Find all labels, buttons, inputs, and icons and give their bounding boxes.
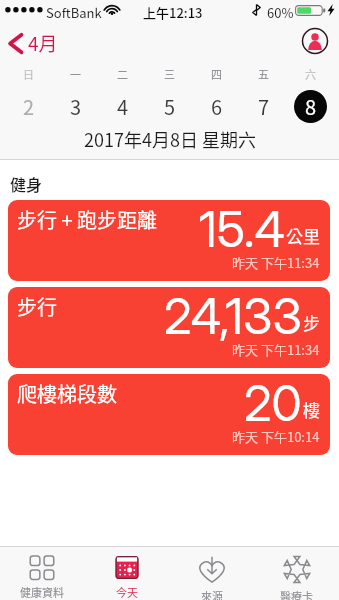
button[interactable]: 5 (146, 84, 193, 128)
staticText: 3 (70, 92, 82, 121)
button[interactable]: 4 (99, 84, 146, 128)
staticText: SoftBank (46, 3, 102, 22)
staticText: 日 (23, 66, 34, 82)
staticText: 爬樓梯段數 (17, 379, 117, 408)
staticText: 7 (258, 92, 270, 121)
staticText: 六 (305, 66, 316, 82)
button[interactable]: 步行 + 跑步距離 (8, 200, 330, 281)
button[interactable]: 6 (193, 84, 240, 128)
staticText: 步行 (17, 292, 57, 321)
staticText: 24,133 (164, 287, 302, 346)
staticText: 今天 (116, 584, 138, 600)
staticText: 健康資料 (20, 584, 64, 600)
staticText: 4 (117, 92, 129, 121)
staticText: 昨天 下午11:34 (232, 253, 320, 272)
staticText: 8 (305, 92, 317, 121)
staticText: 5 (164, 92, 176, 121)
button[interactable]: 爬樓梯段數 (8, 374, 330, 455)
button[interactable]: 7 (240, 84, 287, 128)
button[interactable]: Profile (301, 27, 329, 55)
staticText: 步 (303, 310, 320, 335)
staticText: 步行 + 跑步距離 (17, 205, 158, 234)
staticText: 昨天 下午11:34 (232, 340, 320, 359)
staticText: 2 (23, 92, 35, 121)
button[interactable]: 醫療卡 (254, 547, 339, 600)
staticText: 昨天 下午10:14 (232, 427, 320, 446)
button[interactable]: 3 (52, 84, 99, 128)
staticText: 二 (117, 66, 128, 82)
button[interactable]: 健康資料 (0, 547, 84, 600)
staticText: 15.4 (199, 200, 285, 259)
staticText: 樓 (303, 397, 320, 422)
staticText: 6 (211, 92, 223, 121)
staticText: 公里 (286, 223, 320, 248)
button[interactable]: 2 (5, 84, 52, 128)
staticText: 健身 (10, 172, 43, 195)
staticText: 上午12:13 (143, 3, 203, 22)
staticText: 一 (70, 66, 81, 82)
staticText: 醫療卡 (280, 588, 313, 600)
staticText: 五 (258, 66, 269, 82)
staticText: 三 (164, 66, 175, 82)
staticText: 60% (267, 3, 294, 22)
staticText: 四 (211, 66, 222, 82)
button[interactable]: 來源 (169, 547, 254, 600)
staticText: 來源 (201, 588, 223, 600)
staticText: 4月 (28, 29, 58, 57)
button[interactable]: 今天 (84, 547, 169, 600)
button[interactable]: 8 (287, 84, 334, 128)
button[interactable]: 4月 (0, 23, 66, 63)
staticText: 20 (244, 374, 302, 433)
button[interactable]: 步行 (8, 287, 330, 368)
staticText: 2017年4月8日 星期六 (84, 126, 256, 150)
